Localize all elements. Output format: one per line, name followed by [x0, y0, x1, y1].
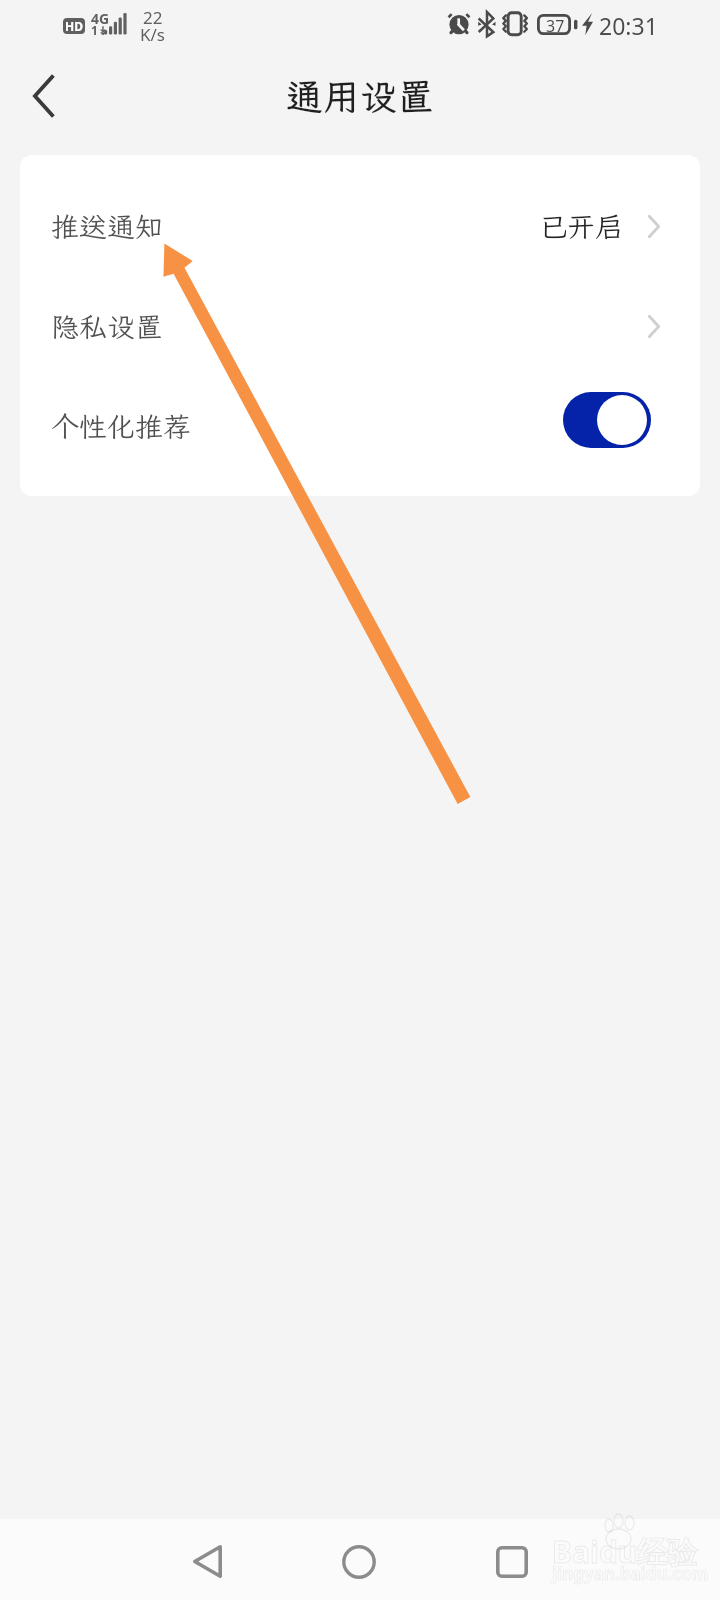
staticText: 个性化推荐	[51, 408, 192, 445]
staticText: 37	[546, 15, 565, 37]
staticText: K/s	[140, 23, 165, 46]
staticText: 隐私设置	[51, 308, 164, 345]
staticText: 4G	[91, 9, 110, 28]
button[interactable]: Back	[147, 1519, 267, 1600]
staticText: 通用设置	[286, 72, 434, 121]
button[interactable]: 推送通知	[20, 176, 700, 276]
staticText: 20:31	[599, 10, 658, 41]
staticText: 推送通知	[51, 208, 164, 245]
button[interactable]: Toggle personalised recommendations	[563, 392, 651, 448]
button[interactable]: Home	[299, 1519, 419, 1600]
staticText: HD	[65, 18, 83, 34]
button[interactable]: 个性化推荐	[20, 376, 700, 476]
button[interactable]: Recent apps	[452, 1519, 572, 1600]
button[interactable]: 隐私设置	[20, 276, 700, 376]
staticText: 22	[143, 6, 163, 29]
staticText: 1↡	[91, 22, 108, 38]
button[interactable]: Back	[8, 60, 80, 132]
staticText: 已开启	[539, 208, 624, 245]
